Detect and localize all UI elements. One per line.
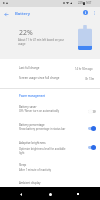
- button[interactable]: Sleep: [0, 159, 100, 176]
- button[interactable]: Switch off: [85, 106, 98, 116]
- staticText: 3h 13m: [85, 77, 95, 81]
- staticText: Ambient display: [19, 181, 41, 185]
- staticText: 22%: [19, 28, 33, 37]
- button[interactable]: More options: [90, 8, 99, 17]
- button[interactable]: Home: [44, 187, 56, 200]
- button[interactable]: Ambient display: [0, 177, 100, 187]
- button[interactable]: Adaptive brightness: [0, 138, 100, 158]
- button[interactable]: Battery percentage: [0, 119, 100, 136]
- staticText: 14 hr 50m ago: [75, 67, 93, 71]
- staticText: Adaptive brightness: [19, 141, 46, 145]
- staticText: Show battery percentage in status bar: [19, 127, 66, 131]
- staticText: Power management: [19, 94, 46, 98]
- button[interactable]: Back: [15, 187, 27, 200]
- staticText: Battery percentage: [19, 123, 45, 127]
- staticText: Sleep: [19, 163, 27, 167]
- button[interactable]: Screen usage since full charge: [0, 69, 100, 79]
- staticText: Battery saver: [19, 105, 37, 109]
- button[interactable]: Navigate up: [0, 7, 13, 21]
- staticText: 9:07: [86, 1, 92, 5]
- staticText: After 1 minute of inactivity: [19, 168, 52, 172]
- staticText: Screen usage since full charge: [19, 76, 60, 80]
- staticText: 22%: [78, 1, 84, 5]
- button[interactable]: Info: [81, 8, 90, 17]
- button[interactable]: Switch on: [85, 123, 98, 133]
- button[interactable]: Recents: [72, 187, 84, 200]
- button[interactable]: Battery saver: [0, 101, 100, 118]
- staticText: Off / Never turn on automatically: [19, 109, 60, 113]
- staticText: Battery: [15, 10, 31, 16]
- staticText: Last full charge: [19, 66, 40, 70]
- staticText: Optimize brightness level for available …: [19, 147, 67, 155]
- button[interactable]: Last full charge: [0, 59, 100, 69]
- button[interactable]: Switch on: [85, 142, 98, 152]
- staticText: About 11 hr 47 min left based on your us…: [18, 38, 67, 46]
